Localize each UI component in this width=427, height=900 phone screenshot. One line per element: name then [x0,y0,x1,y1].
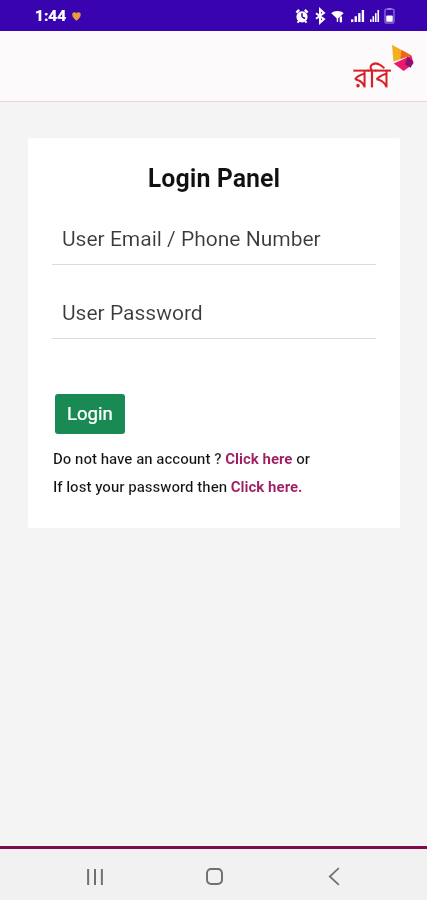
staticText: User Email / Phone Number [62,227,321,252]
button[interactable]: Login [55,394,125,434]
staticText: 1:44 [35,7,67,25]
button[interactable]: If lost your password then Click here. [53,478,303,496]
button[interactable]: Do not have an account ? Click here or [53,450,311,468]
button[interactable]: Home [190,849,238,900]
button[interactable]: Back [310,849,358,900]
staticText: Login [67,403,113,425]
staticText: রবি [354,61,391,98]
button[interactable]: User Email / Phone Number [28,227,400,273]
button[interactable]: Recent apps [71,849,119,900]
button[interactable]: User Password [28,301,400,347]
staticText: User Password [62,301,203,326]
staticText: Login Panel [28,164,400,193]
